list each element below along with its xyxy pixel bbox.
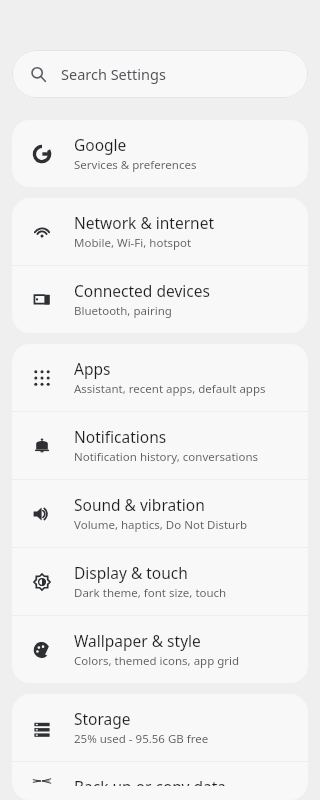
button[interactable]: Storage [12,694,308,761]
staticText: Google [74,134,127,155]
staticText: Network & internet [74,212,214,233]
staticText: Notification history, conversations [74,449,259,465]
button[interactable]: Network & internet [12,198,308,265]
staticText: Display & touch [74,562,188,583]
button[interactable]: Display & touch [12,548,308,615]
staticText: Dark theme, font size, touch [74,585,227,601]
staticText: Sound & vibration [74,494,205,515]
staticText: Search Settings [61,64,166,84]
staticText: Colors, themed icons, app grid [74,653,240,669]
staticText: 25% used - 95.56 GB free [74,731,209,747]
staticText: Assistant, recent apps, default apps [74,381,266,397]
staticText: Bluetooth, pairing [74,303,172,319]
other: Search [30,66,47,83]
button[interactable]: Notifications [12,412,308,479]
button[interactable]: Connected devices [12,266,308,333]
button[interactable]: Search [12,50,308,98]
staticText: Volume, haptics, Do Not Disturb [74,517,247,533]
staticText: Back up or copy data [74,776,226,786]
staticText: Wallpaper & style [74,630,201,651]
button[interactable]: Sound & vibration [12,480,308,547]
staticText: Connected devices [74,280,210,301]
staticText: Services & preferences [74,157,197,173]
staticText: Storage [74,708,131,729]
button[interactable]: Wallpaper & style [12,616,308,683]
button[interactable]: Google [12,120,308,187]
staticText: Notifications [74,426,167,447]
staticText: Mobile, Wi-Fi, hotspot [74,235,192,251]
staticText: Apps [74,358,111,379]
button[interactable]: Apps [12,344,308,411]
button[interactable]: Back up or copy data [12,762,308,800]
